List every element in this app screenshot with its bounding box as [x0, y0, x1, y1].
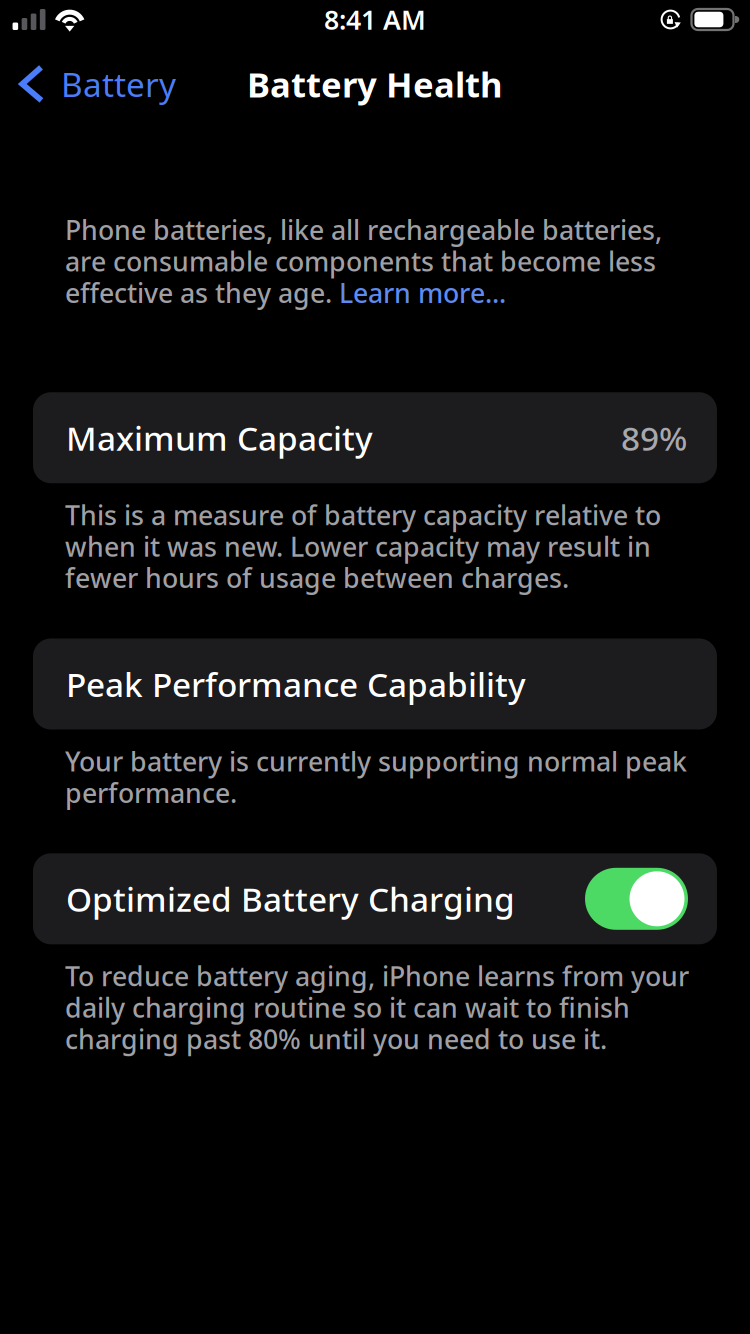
button[interactable]: Optimized Battery Charging	[0, 853, 750, 944]
staticText: Battery	[61, 62, 176, 106]
button[interactable]: Battery	[0, 54, 190, 114]
staticText: Battery Health	[247, 61, 503, 107]
staticText: Optimized Battery Charging	[66, 877, 515, 921]
staticText: Phone batteries, like all rechargeable b…	[65, 212, 662, 310]
staticText: Your battery is currently supporting nor…	[65, 743, 687, 810]
button[interactable]: Maximum Capacity	[0, 392, 750, 483]
staticText: To reduce battery aging, iPhone learns f…	[65, 958, 689, 1056]
staticText: Peak Performance Capability	[66, 662, 526, 706]
staticText: 89%	[621, 416, 687, 460]
staticText: 8:41 AM	[324, 2, 426, 37]
button[interactable]: Phone batteries, like all rechargeable b…	[0, 212, 750, 310]
staticText: This is a measure of battery capacity re…	[65, 497, 661, 595]
staticText: Maximum Capacity	[66, 416, 373, 460]
button[interactable]: Peak Performance Capability	[0, 638, 750, 729]
